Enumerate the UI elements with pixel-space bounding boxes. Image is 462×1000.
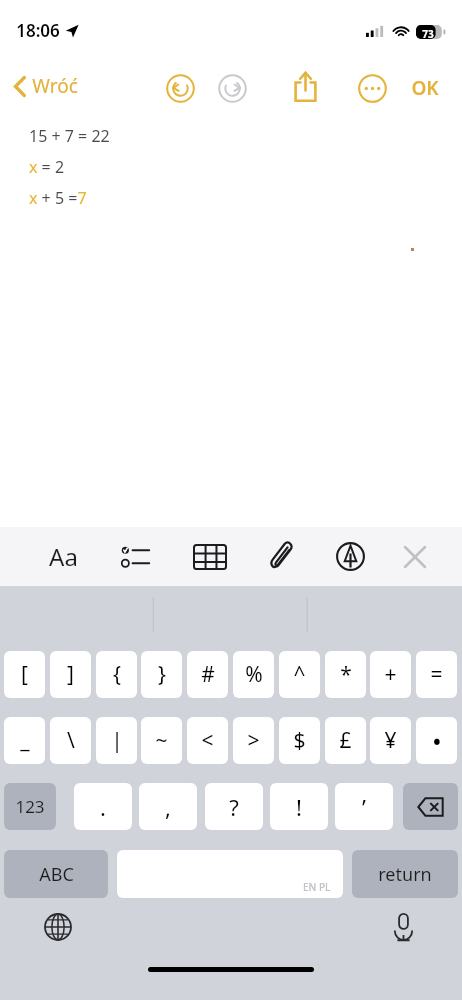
button[interactable]: Share <box>286 67 324 105</box>
button[interactable]: $ <box>279 717 320 764</box>
staticText: ] <box>67 660 74 689</box>
staticText: 123 <box>15 795 45 818</box>
staticText: Wróć <box>32 73 78 99</box>
button[interactable]: ABC <box>4 850 108 898</box>
button[interactable]: Space <box>117 850 343 898</box>
staticText: | <box>111 726 123 755</box>
staticText: = <box>430 660 443 689</box>
button[interactable]: Backspace <box>403 783 458 830</box>
button[interactable]: { <box>96 651 137 698</box>
staticText: _ <box>20 726 30 755</box>
staticText: % <box>245 660 263 689</box>
button[interactable]: £ <box>325 717 366 764</box>
staticText: $ <box>293 726 306 755</box>
button[interactable]: ¥ <box>370 717 411 764</box>
staticText: return <box>378 862 432 887</box>
button[interactable]: Markup <box>327 535 373 578</box>
button[interactable]: % <box>233 651 274 698</box>
button[interactable]: ^ <box>279 651 320 698</box>
staticText: ? <box>229 792 239 822</box>
staticText: 15 + 7 = 22 <box>29 125 110 147</box>
staticText: OK <box>411 75 439 101</box>
staticText: + <box>384 660 397 689</box>
button[interactable]: [ <box>4 651 45 698</box>
staticText: ABC <box>39 862 74 887</box>
staticText: # <box>201 660 215 689</box>
button[interactable]: Wróć <box>8 69 84 103</box>
staticText: ~ <box>155 726 168 755</box>
staticText: , <box>165 792 171 822</box>
button[interactable]: Redo <box>215 71 249 105</box>
button[interactable]: Text format <box>40 535 86 578</box>
staticText: { <box>113 660 121 689</box>
staticText: < <box>201 726 214 755</box>
button[interactable]: # <box>187 651 228 698</box>
staticText: 73 <box>418 27 438 41</box>
staticText: EN PL <box>303 880 331 894</box>
staticText: • <box>432 723 442 758</box>
staticText: x + 5 =7 <box>29 187 87 209</box>
staticText: * <box>340 660 352 689</box>
button[interactable]: return <box>352 850 458 898</box>
button[interactable]: • <box>416 717 457 764</box>
button[interactable]: OK <box>405 71 445 105</box>
button[interactable]: _ <box>4 717 45 764</box>
staticText: ¥ <box>384 726 397 755</box>
staticText: . <box>100 792 106 822</box>
button[interactable]: Undo <box>163 71 197 105</box>
staticText: [ <box>21 660 28 689</box>
button[interactable]: ] <box>50 651 91 698</box>
button[interactable]: } <box>141 651 182 698</box>
button[interactable]: * <box>325 651 366 698</box>
staticText: x = 2 <box>29 156 65 178</box>
staticText: 18:06 <box>16 19 60 42</box>
button[interactable]: , <box>139 783 197 830</box>
staticText: > <box>247 726 260 755</box>
button[interactable]: Checklist <box>112 535 158 578</box>
button[interactable]: ~ <box>141 717 182 764</box>
button[interactable]: Switch keyboard language <box>37 906 79 948</box>
button[interactable]: + <box>370 651 411 698</box>
staticText: ! <box>296 792 302 822</box>
staticText: \ <box>67 726 75 755</box>
staticText: ^ <box>293 660 306 689</box>
button[interactable]: > <box>233 717 274 764</box>
button[interactable]: Table <box>187 535 233 578</box>
button[interactable]: More options <box>355 71 389 105</box>
button[interactable]: = <box>416 651 457 698</box>
button[interactable]: ’ <box>335 783 393 830</box>
button[interactable]: \ <box>50 717 91 764</box>
staticText: ’ <box>362 792 366 822</box>
button[interactable]: ! <box>270 783 328 830</box>
button[interactable]: Dictate <box>382 906 424 948</box>
staticText: } <box>158 660 166 689</box>
staticText: £ <box>339 726 352 755</box>
button[interactable]: | <box>96 717 137 764</box>
button[interactable]: Attach file <box>259 535 305 578</box>
button[interactable]: . <box>74 783 132 830</box>
button[interactable]: < <box>187 717 228 764</box>
button[interactable]: 123 <box>4 783 56 830</box>
button[interactable]: Close keyboard <box>392 535 438 578</box>
button[interactable]: ? <box>205 783 263 830</box>
staticText: Aa <box>49 540 78 573</box>
